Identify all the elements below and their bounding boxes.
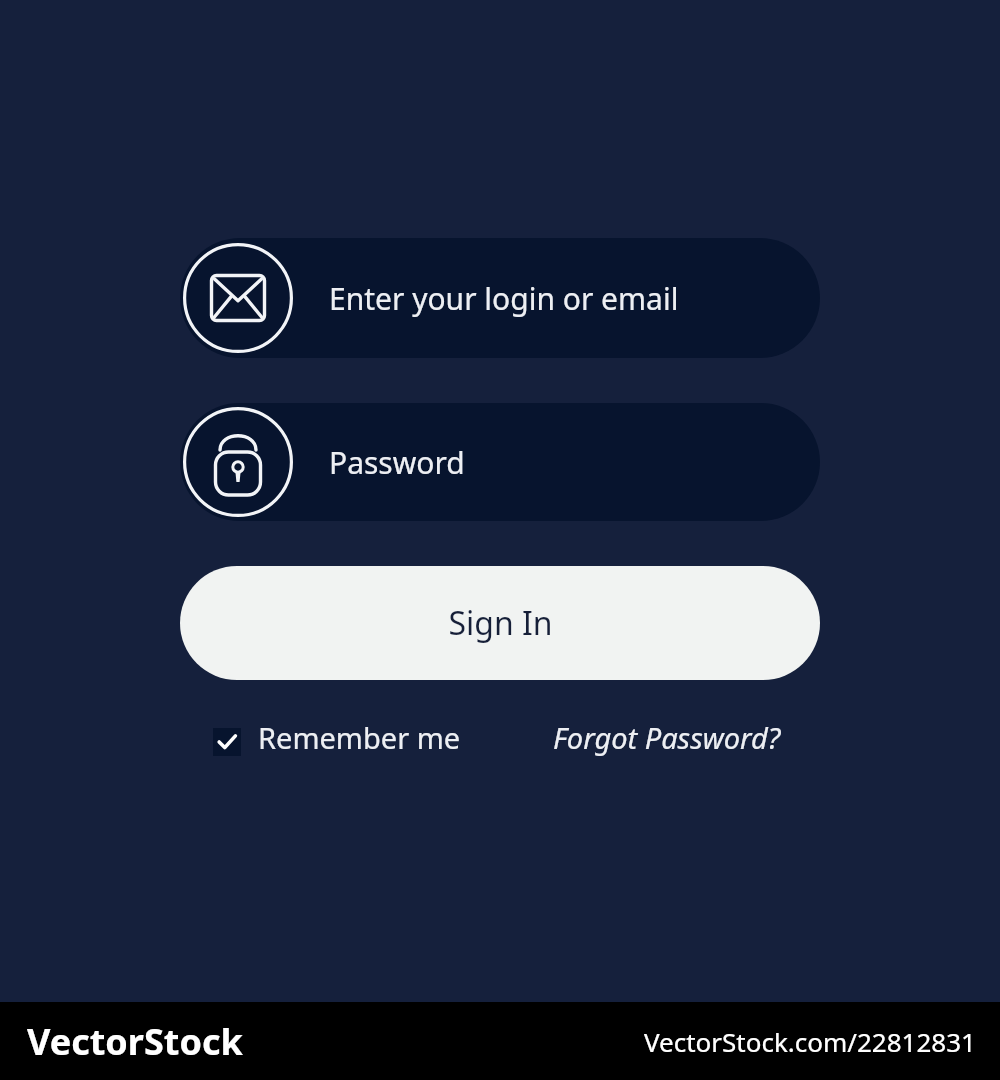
other: Password [183,407,293,517]
staticText: Enter your login or email [329,278,679,319]
staticText: VectorStock.com/22812831 [644,1024,976,1059]
button[interactable]: Remember me [213,718,461,757]
button[interactable]: Enter your login or email [180,238,820,358]
staticText: Sign In [448,601,553,645]
staticText: Forgot Password? [553,718,781,757]
button[interactable]: Password [180,403,820,521]
staticText: VectorStock [27,1017,243,1066]
other: Email [183,243,293,353]
staticText: Remember me [258,718,461,757]
staticText: Password [329,442,465,483]
button[interactable]: Sign In [180,566,820,680]
button[interactable]: Forgot Password? [553,718,781,757]
